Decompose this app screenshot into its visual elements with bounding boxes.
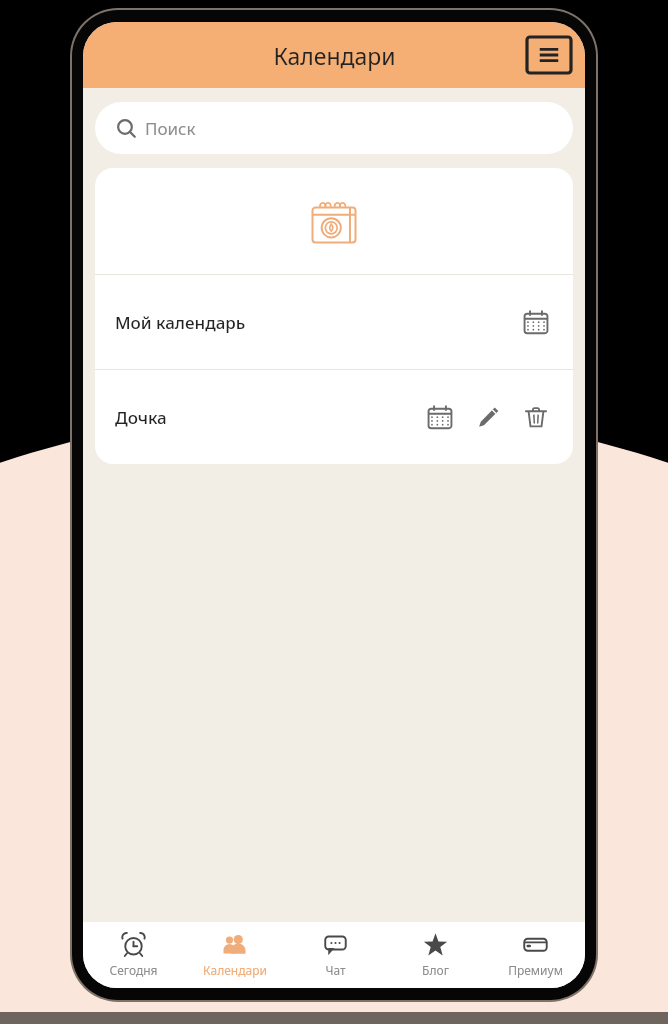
button[interactable]: Сегодня (83, 922, 184, 988)
staticText: Календари (273, 40, 396, 71)
button[interactable]: Мой календарь (95, 275, 573, 369)
staticText: Дочка (115, 406, 167, 429)
button[interactable]: Премиум (485, 922, 585, 988)
button[interactable]: Open calendar (519, 305, 553, 339)
button[interactable]: Календари (184, 922, 285, 988)
staticText: Мой календарь (115, 311, 246, 334)
button[interactable]: Menu (527, 37, 571, 73)
button[interactable]: Чат (285, 922, 385, 988)
staticText: Календари (203, 962, 267, 978)
button[interactable]: Дочка (95, 370, 573, 464)
staticText: Чат (325, 962, 346, 978)
staticText: Поиск (145, 117, 196, 140)
button[interactable]: Edit (471, 400, 505, 434)
staticText: Блог (422, 962, 449, 978)
button[interactable]: Open calendar (423, 400, 457, 434)
staticText: Премиум (508, 962, 563, 978)
button[interactable]: Поиск (95, 102, 573, 154)
button[interactable]: Delete (519, 400, 553, 434)
button[interactable]: Блог (385, 922, 485, 988)
staticText: Сегодня (109, 962, 158, 978)
